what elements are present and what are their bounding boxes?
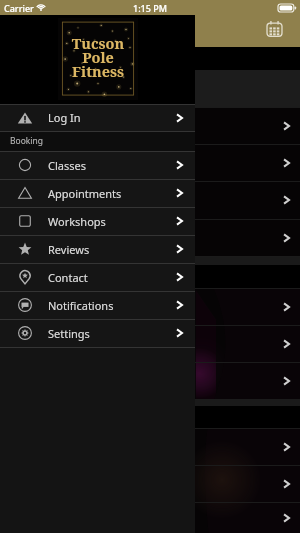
button[interactable] — [0, 181, 300, 219]
button[interactable] — [0, 502, 300, 533]
staticText: Booking — [10, 135, 44, 147]
button[interactable] — [0, 362, 300, 399]
button[interactable] — [0, 325, 300, 362]
button[interactable]: Workshops — [0, 207, 195, 235]
button[interactable]: Reviews — [0, 235, 195, 263]
button[interactable] — [0, 144, 300, 181]
button[interactable] — [0, 288, 300, 325]
staticText: Settings — [48, 326, 90, 341]
button[interactable]: Log In — [0, 104, 195, 131]
other: Calendar — [266, 20, 283, 38]
staticText: Tucson Pole Fitness — [58, 33, 138, 81]
button[interactable]: Classes — [0, 151, 195, 179]
staticText: Appointments — [48, 186, 122, 201]
staticText: 1:15 PM — [133, 2, 167, 14]
button[interactable]: Contact — [0, 263, 195, 291]
staticText: Log In — [48, 110, 81, 125]
button[interactable]: Appointments — [0, 179, 195, 207]
staticText: Contact — [48, 270, 88, 285]
button[interactable] — [0, 107, 300, 144]
button[interactable] — [0, 465, 300, 502]
staticText: Carrier — [4, 2, 34, 14]
staticText: Workshops — [48, 214, 106, 229]
button[interactable] — [0, 219, 300, 256]
staticText: Reviews — [48, 242, 90, 257]
button[interactable]: Settings — [0, 319, 195, 347]
staticText: Notifications — [48, 298, 114, 313]
button[interactable]: Notifications — [0, 291, 195, 319]
staticText: Classes — [48, 158, 86, 173]
button[interactable] — [0, 428, 300, 465]
